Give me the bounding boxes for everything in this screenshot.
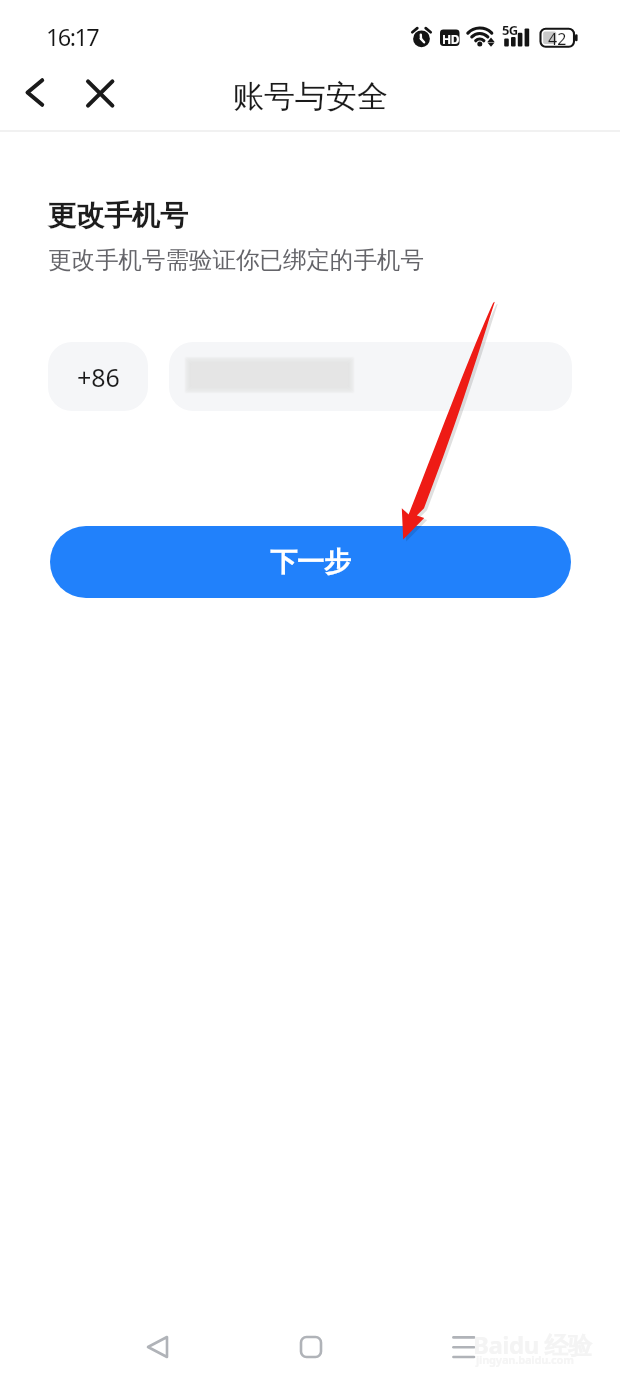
button[interactable]: Close [70,62,128,132]
staticText: 下一步 [270,545,351,579]
staticText: 账号与安全 [233,77,388,116]
staticText: 16:17 [46,21,99,53]
staticText: HD [442,31,459,47]
button[interactable]: Back [122,1331,192,1381]
staticText: 5G [502,21,518,39]
staticText: 更改手机号需验证你已绑定的手机号 [48,245,424,275]
button[interactable] [169,342,572,411]
button[interactable]: 下一步 [50,526,571,598]
staticText: 42 [548,28,567,50]
button[interactable]: Home [276,1331,346,1381]
staticText: jingyan.baidu.com [476,1352,574,1367]
staticText: 更改手机号 [48,198,188,233]
button[interactable]: Recent apps [428,1331,498,1381]
staticText: Baidu 经验 [473,1328,592,1361]
button[interactable]: Back [6,62,64,132]
staticText: +86 [77,360,120,394]
button[interactable]: +86 [48,342,148,411]
